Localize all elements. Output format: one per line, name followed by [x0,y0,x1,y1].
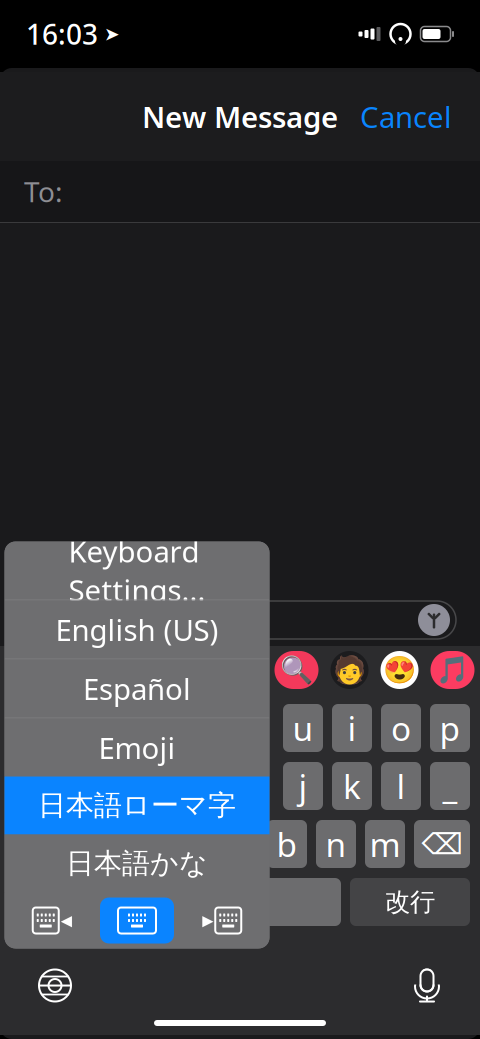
button[interactable]: App [380,651,418,689]
staticText: l [396,764,405,808]
button[interactable]: u [283,704,323,752]
button[interactable]: n [316,820,356,868]
button[interactable]: Emoji [4,718,269,776]
button[interactable]: 改行 [350,878,470,926]
button[interactable]: Dock keyboard left [15,897,89,943]
button[interactable]: 日本語ローマ字 [4,776,269,834]
staticText: 🔍 [280,655,313,685]
button[interactable]: Cancel [346,87,466,146]
staticText: 🧑 [333,655,366,685]
button[interactable]: App [430,651,474,689]
button[interactable]: m [365,820,405,868]
staticText: Emoji [98,728,175,767]
staticText: 🎵 [436,655,469,685]
button[interactable]: i [332,704,372,752]
button[interactable]: English (US) [4,600,269,658]
button[interactable]: Español [4,659,269,717]
button[interactable]: Dock keyboard right [185,897,259,943]
button[interactable]: Full keyboard [100,897,174,943]
staticText: ⌫ [421,827,462,861]
button[interactable]: l [381,762,421,810]
staticText: u [292,706,313,750]
button[interactable]: p [430,704,470,752]
button[interactable]: _ [430,762,470,810]
button[interactable]: To: [0,161,480,222]
staticText: _ [442,764,457,808]
staticText: ◀ [61,912,72,929]
staticText: 改行 [385,886,435,917]
button[interactable]: Send [414,600,454,640]
button[interactable]: Delete [414,820,470,868]
button[interactable]: b [267,820,307,868]
button[interactable]: Dictate [400,954,454,1016]
staticText: k [343,764,361,808]
staticText: n [325,822,346,866]
staticText: English (US) [55,610,218,649]
staticText: Cancel [360,97,452,136]
staticText: o [391,706,411,750]
staticText: Keyboard Settings... [68,531,205,609]
staticText: p [439,706,460,750]
button[interactable]: o [381,704,421,752]
staticText: To: [24,173,63,210]
staticText: 😍 [383,655,416,685]
button[interactable]: App [274,651,318,689]
staticText: ▶ [202,912,213,929]
button[interactable]: Space [236,878,341,926]
staticText: ➤ [98,23,120,45]
button[interactable]: k [332,762,372,810]
staticText: b [276,822,297,866]
staticText: j [298,764,307,808]
staticText: New Message [142,97,338,136]
staticText: 日本語かな [66,846,208,881]
button[interactable]: Keyboard Settings... [4,541,269,599]
button[interactable]: j [283,762,323,810]
staticText: i [347,706,356,750]
staticText: 16:03 [26,15,98,53]
staticText: 日本語ローマ字 [38,788,236,823]
staticText: m [369,822,400,866]
button[interactable]: App [330,651,368,689]
staticText: Español [83,669,191,708]
button[interactable]: Switch keyboard [26,956,84,1014]
button[interactable]: 日本語かな [4,834,269,892]
